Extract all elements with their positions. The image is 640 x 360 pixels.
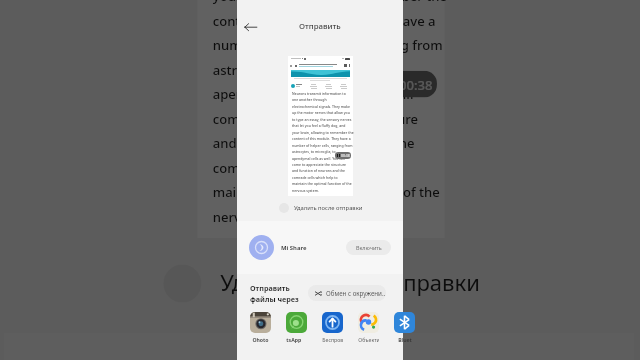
- staticText: number of helper cells, ranging from: [292, 143, 353, 148]
- staticText: that let you feel a fluffy dog, and: [292, 123, 346, 128]
- staticText: and function of neurons and the: [292, 168, 346, 173]
- staticText: файлы через: [250, 294, 299, 304]
- staticText: come to appreciate the structure: [213, 109, 422, 128]
- button[interactable]: Bluet: [394, 312, 415, 343]
- staticText: electrochemical signals. They make: [292, 104, 350, 109]
- staticText: come to appreciate the structure: [292, 162, 347, 167]
- staticText: to type an essay, the sensory nerves: [292, 117, 352, 122]
- staticText: maintain the optimal function of the: [213, 182, 441, 201]
- staticText: comrade cells which help to: [213, 158, 388, 177]
- staticText: your brain, allowing to remember the: [213, 0, 448, 5]
- staticText: one another through: [292, 97, 327, 102]
- staticText: content of this module. They have a: [213, 11, 437, 30]
- staticText: tsApp 1: [286, 336, 307, 343]
- button[interactable]: Ohoto: [250, 312, 271, 343]
- staticText: Удалить после отправки: [294, 204, 363, 212]
- button[interactable]: Обмен с окружени..: [308, 285, 386, 301]
- staticText: up the motor nerves that allow you: [292, 110, 350, 115]
- staticText: Mi Share: [281, 244, 307, 252]
- staticText: Объектив: [358, 336, 379, 343]
- staticText: apendymal cells as well. You will: [213, 84, 414, 103]
- staticText: Ohoto: [252, 336, 269, 343]
- staticText: Bluet: [398, 336, 412, 343]
- staticText: Neurons transmit information to: [292, 91, 346, 96]
- staticText: Отправить: [250, 283, 290, 293]
- staticText: astrocytes, to microglia, to: [292, 149, 336, 154]
- button[interactable]: Mi Share: [4, 333, 635, 360]
- staticText: Отправить: [299, 21, 341, 32]
- staticText: Обмен с окружени..: [326, 289, 386, 297]
- button[interactable]: Беспров.: [322, 312, 343, 343]
- staticText: maintain the optimal function of the: [292, 181, 352, 186]
- staticText: Удалить после отправки: [220, 268, 483, 299]
- button[interactable]: tsApp 1: [286, 312, 307, 343]
- staticText: comrade cells which help to: [292, 175, 338, 180]
- staticText: nervous system.: [292, 188, 319, 193]
- staticText: Включить: [356, 244, 382, 251]
- staticText: Беспров.: [322, 336, 343, 343]
- staticText: your brain, allowing to remember the: [292, 130, 354, 135]
- button[interactable]: Объектив: [358, 312, 379, 343]
- button[interactable]: Mi Share: [237, 221, 403, 274]
- button[interactable]: Back: [243, 20, 257, 34]
- staticText: nervous system.: [213, 207, 315, 226]
- staticText: number of helper cells, ranging from: [213, 35, 445, 54]
- staticText: 00:38: [399, 75, 433, 94]
- button[interactable]: Удалить после отправки: [4, 253, 635, 314]
- staticText: apendymal cells as well. You will: [292, 155, 345, 160]
- staticText: astrocytes, to microglia, to: [213, 60, 380, 79]
- staticText: and function of neurons and the: [213, 133, 418, 152]
- button[interactable]: Удалить после отправки: [237, 200, 403, 216]
- staticText: content of this module. They have a: [292, 136, 351, 141]
- button[interactable]: Включить: [346, 240, 391, 255]
- staticText: 00:38: [341, 153, 350, 158]
